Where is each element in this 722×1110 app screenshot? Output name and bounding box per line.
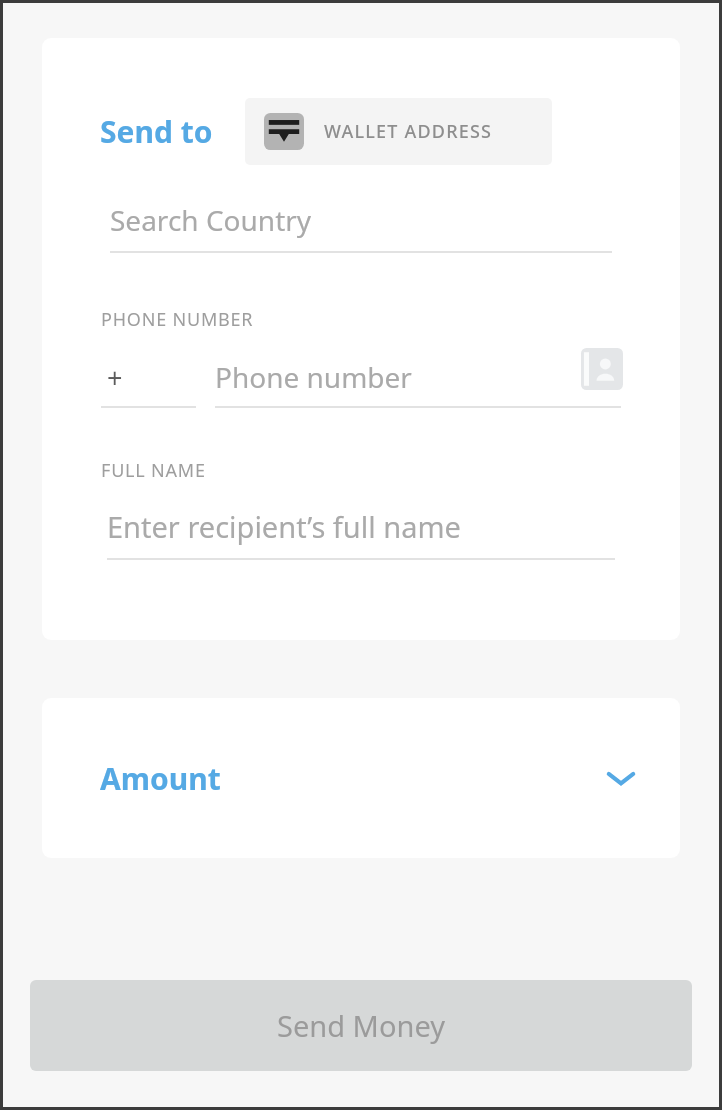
staticText: Search Country: [110, 201, 312, 239]
button[interactable]: +: [101, 359, 196, 408]
staticText: Enter recipient’s full name: [107, 507, 461, 546]
button[interactable]: Choose from contacts: [581, 348, 623, 390]
staticText: FULL NAME: [101, 458, 206, 483]
staticText: WALLET ADDRESS: [324, 119, 493, 144]
staticText: Send Money: [277, 1006, 445, 1045]
button[interactable]: Enter recipient’s full name: [107, 507, 615, 560]
staticText: Phone number: [215, 358, 412, 396]
staticText: Amount: [100, 758, 221, 799]
button[interactable]: Phone number: [215, 358, 621, 408]
staticText: PHONE NUMBER: [101, 307, 254, 332]
button[interactable]: Amount: [42, 698, 680, 858]
button[interactable]: Send Money: [30, 980, 692, 1071]
button[interactable]: Send to: [100, 111, 213, 152]
button[interactable]: WALLET ADDRESS: [245, 98, 552, 165]
button[interactable]: Search Country: [110, 201, 612, 253]
staticText: +: [107, 359, 123, 396]
